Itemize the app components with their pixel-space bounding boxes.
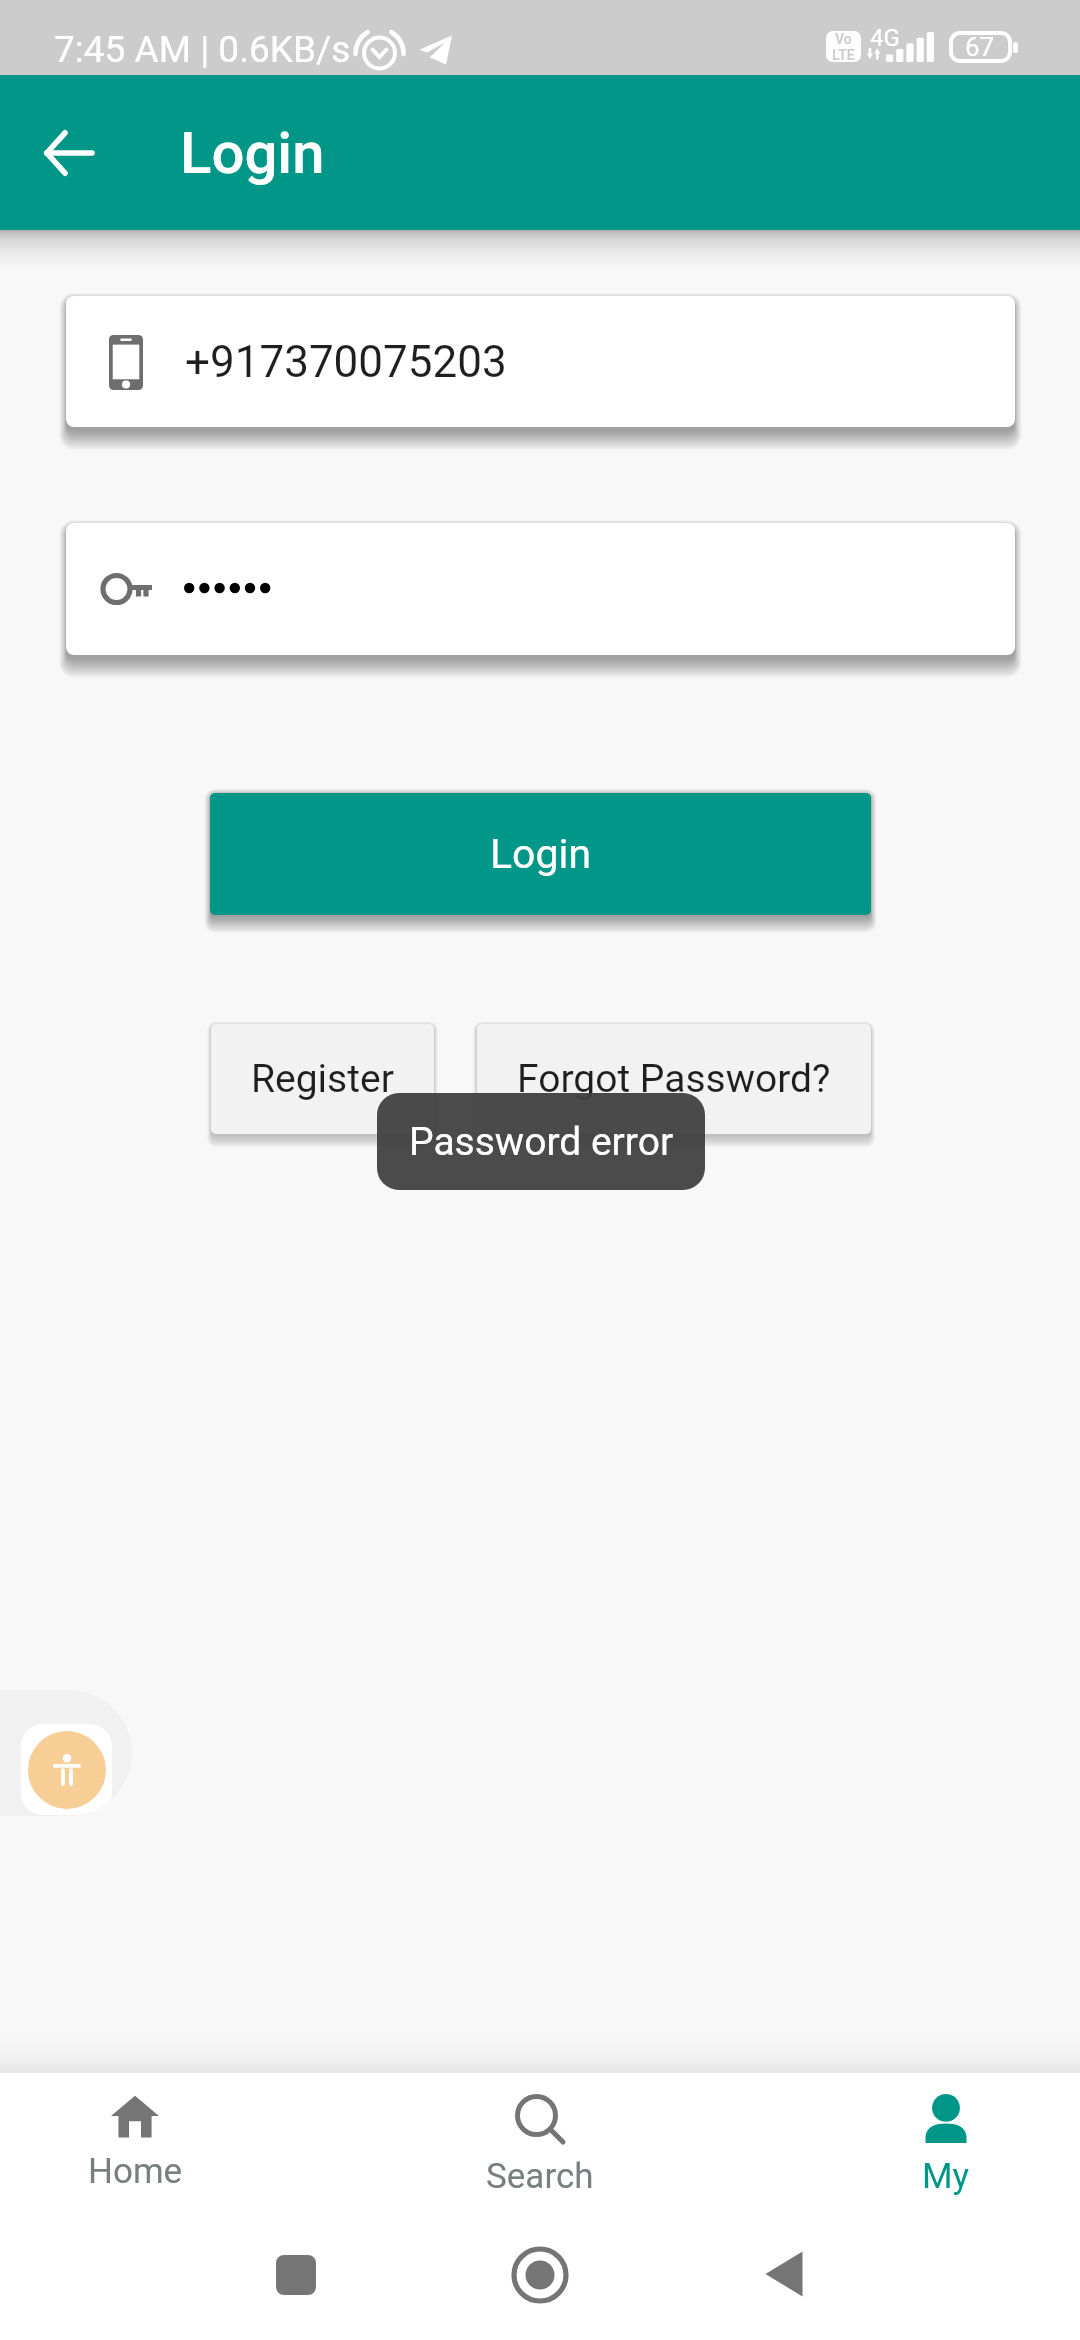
button[interactable]: +917370075203 [66, 296, 1015, 427]
staticText: Register [251, 1056, 394, 1102]
button[interactable]: Back [744, 2234, 824, 2314]
button[interactable]: Login [210, 793, 871, 915]
button[interactable]: Back [25, 109, 113, 197]
button[interactable]: My [856, 2073, 1036, 2218]
staticText: 7:45 AM | 0.6KB/s [54, 28, 351, 71]
button[interactable]: Search [450, 2073, 630, 2218]
button[interactable]: Recent apps [256, 2235, 336, 2315]
button[interactable]: Forgot Password? [477, 1024, 871, 1134]
button[interactable]: Register [211, 1024, 434, 1134]
staticText: Login [180, 119, 325, 187]
staticText: LTE [832, 47, 855, 62]
staticText: Home [88, 2151, 183, 2192]
staticText: My [922, 2156, 970, 2197]
staticText: 4G [870, 24, 900, 52]
staticText: Login [490, 830, 592, 878]
staticText: 67 [965, 32, 995, 62]
button[interactable]: Home [45, 2073, 225, 2218]
staticText: Vo [835, 31, 852, 47]
staticText: Password error [409, 1119, 674, 1165]
button[interactable]: Home [500, 2235, 580, 2315]
staticText: Search [486, 2156, 594, 2197]
staticText: Forgot Password? [517, 1056, 831, 1102]
button[interactable]: Accessibility menu [0, 1690, 132, 1816]
staticText: +917370075203 [185, 336, 507, 388]
button[interactable] [66, 523, 1015, 655]
